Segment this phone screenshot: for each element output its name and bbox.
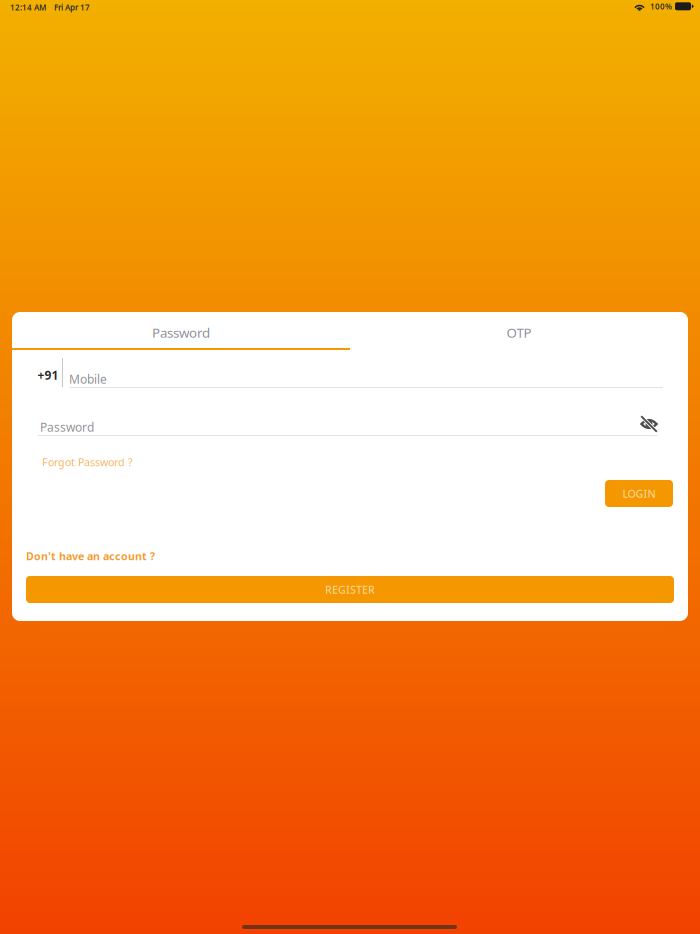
button[interactable]: Password [12,312,350,350]
button[interactable]: Show password [636,411,662,437]
staticText: 100% [650,1,672,12]
staticText: Password [40,419,94,435]
button[interactable]: OTP [350,312,688,350]
staticText: Password [152,324,210,341]
staticText: Forgot Password ? [42,455,133,469]
staticText: Mobile [69,371,107,387]
staticText: LOGIN [622,486,655,501]
button[interactable]: LOGIN [605,480,673,507]
button[interactable]: Forgot Password ? [42,455,133,469]
staticText: +91 [37,367,58,383]
staticText: OTP [506,324,531,341]
staticText: Don't have an account ? [26,549,155,563]
staticText: REGISTER [325,582,375,597]
button[interactable]: REGISTER [26,576,674,603]
staticText: Fri Apr 17 [54,2,90,13]
staticText: 12:14 AM [10,2,46,13]
